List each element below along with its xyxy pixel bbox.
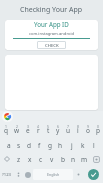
staticText: b xyxy=(61,155,65,164)
button[interactable]: 7 xyxy=(63,122,73,137)
button[interactable]: 4 xyxy=(33,122,43,137)
staticText: o xyxy=(86,126,90,135)
staticText: j xyxy=(71,141,73,150)
staticText: 7 xyxy=(67,124,69,129)
staticText: Your App ID xyxy=(34,20,69,28)
staticText: u xyxy=(66,126,71,135)
button[interactable]: f xyxy=(34,137,44,152)
button[interactable]: 9 xyxy=(83,122,93,137)
button[interactable]: 8 xyxy=(73,122,83,137)
staticText: f xyxy=(38,141,41,150)
staticText: 0 xyxy=(97,124,99,129)
staticText: 4 xyxy=(37,124,39,129)
staticText: n xyxy=(71,155,76,164)
button[interactable]: a xyxy=(4,137,14,152)
staticText: l xyxy=(93,141,95,150)
button[interactable]: CHECK xyxy=(37,41,66,49)
button[interactable]: l xyxy=(88,137,99,152)
staticText: 8 xyxy=(77,124,79,129)
button[interactable]: 0 xyxy=(93,122,103,137)
button[interactable]: x xyxy=(24,152,35,166)
staticText: q xyxy=(4,126,8,135)
button[interactable]: 2 xyxy=(11,122,22,137)
staticText: h xyxy=(58,141,63,150)
button[interactable]: Backspace xyxy=(90,152,103,166)
staticText: e xyxy=(26,126,30,135)
staticText: y xyxy=(56,126,60,135)
staticText: CHECK xyxy=(45,42,59,48)
staticText: m xyxy=(81,155,88,164)
button[interactable]: h xyxy=(55,137,66,152)
staticText: x xyxy=(28,155,32,164)
button[interactable]: Period xyxy=(73,166,84,183)
staticText: Checking Your App xyxy=(20,5,83,15)
staticText: 1 xyxy=(5,124,7,129)
button[interactable]: z xyxy=(13,152,24,166)
button[interactable]: ?123 xyxy=(0,166,14,183)
staticText: z xyxy=(17,155,21,164)
staticText: 9 xyxy=(87,124,89,129)
staticText: v xyxy=(50,155,54,164)
button[interactable]: k xyxy=(77,137,88,152)
button[interactable]: b xyxy=(57,152,68,166)
button[interactable]: 3 xyxy=(22,122,33,137)
button[interactable]: Shift xyxy=(0,152,13,166)
button[interactable]: Enter xyxy=(84,166,103,183)
button[interactable]: Comma xyxy=(14,166,23,183)
staticText: k xyxy=(81,141,85,150)
button[interactable]: d xyxy=(24,137,34,152)
staticText: 3 xyxy=(27,124,29,129)
button[interactable]: 6 xyxy=(53,122,63,137)
button[interactable]: 1 xyxy=(0,122,11,137)
button[interactable]: s xyxy=(14,137,24,152)
staticText: g xyxy=(48,141,52,150)
staticText: ?123 xyxy=(2,172,12,178)
staticText: 5 xyxy=(47,124,49,129)
button[interactable]: c xyxy=(35,152,46,166)
staticText: r xyxy=(37,126,40,135)
staticText: 6 xyxy=(57,124,59,129)
staticText: s xyxy=(17,141,21,150)
staticText: com.instagram.android xyxy=(29,31,75,37)
staticText: p xyxy=(96,126,100,135)
staticText: d xyxy=(27,141,31,150)
button[interactable]: 5 xyxy=(43,122,53,137)
button[interactable]: Google xyxy=(2,111,13,122)
button[interactable]: j xyxy=(66,137,77,152)
staticText: i xyxy=(77,126,79,135)
staticText: English xyxy=(47,172,60,177)
button[interactable]: v xyxy=(46,152,57,166)
button[interactable]: English xyxy=(33,169,73,180)
staticText: t xyxy=(47,126,50,135)
staticText: 2 xyxy=(16,124,18,129)
staticText: w xyxy=(14,126,20,135)
button[interactable]: n xyxy=(68,152,79,166)
staticText: a xyxy=(7,141,11,150)
staticText: c xyxy=(39,155,43,164)
button[interactable]: m xyxy=(79,152,90,166)
button[interactable]: g xyxy=(44,137,55,152)
button[interactable]: Emoji xyxy=(23,166,33,183)
